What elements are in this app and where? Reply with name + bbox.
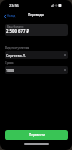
other: Состояние сети bbox=[51, 4, 62, 7]
button[interactable]: Ваш баланс: bbox=[5, 24, 68, 36]
staticText: Вид поступления bbox=[5, 46, 30, 50]
staticText: 2 500 677 ₽ bbox=[6, 28, 30, 34]
staticText: 1000 bbox=[6, 68, 15, 73]
button[interactable]: Перевести bbox=[5, 130, 68, 140]
staticText: Назад bbox=[7, 14, 16, 18]
staticText: 23:56 bbox=[9, 3, 19, 8]
button[interactable]: 1000 bbox=[5, 66, 68, 74]
staticText: Сергеева Л. bbox=[6, 53, 26, 58]
staticText: Сумма bbox=[5, 61, 14, 65]
staticText: Перевести bbox=[29, 133, 45, 137]
staticText: Переводы bbox=[28, 13, 44, 17]
button[interactable]: Сергеева Л. bbox=[5, 51, 68, 59]
button[interactable]: Назад bbox=[3, 13, 17, 19]
staticText: Ваш баланс: bbox=[7, 25, 24, 29]
